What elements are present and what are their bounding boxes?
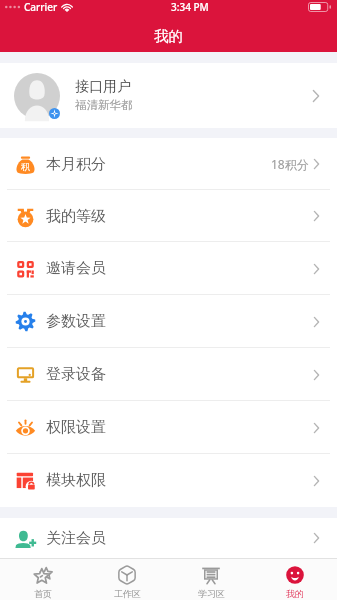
- staticText: 学习区: [198, 588, 225, 599]
- staticText: 本月积分: [46, 155, 106, 174]
- staticText: 我的等级: [46, 207, 106, 226]
- staticText: 首页: [34, 588, 52, 599]
- staticText: 邀请会员: [46, 259, 106, 278]
- staticText: 福清新华都: [75, 98, 133, 112]
- staticText: 18积分: [271, 156, 309, 172]
- button[interactable]: 登录设备: [0, 348, 337, 401]
- button[interactable]: 模块权限: [0, 454, 337, 507]
- button[interactable]: 学习区: [169, 559, 253, 600]
- button[interactable]: 权限设置: [0, 401, 337, 454]
- button[interactable]: 关注会员: [0, 518, 337, 558]
- staticText: 模块权限: [46, 471, 106, 490]
- button[interactable]: 邀请会员: [0, 242, 337, 295]
- button[interactable]: 参数设置: [0, 295, 337, 348]
- button[interactable]: 积: [0, 138, 337, 190]
- staticText: 接口用户: [75, 78, 131, 96]
- button[interactable]: 我的: [253, 559, 337, 600]
- button[interactable]: 工作区: [85, 559, 169, 600]
- staticText: Carrier: [24, 0, 58, 14]
- button[interactable]: 接口用户: [0, 63, 337, 128]
- staticText: 我的: [154, 27, 183, 45]
- staticText: 关注会员: [46, 529, 106, 548]
- button[interactable]: 我的等级: [0, 190, 337, 242]
- staticText: 我的: [286, 588, 304, 599]
- staticText: 权限设置: [46, 418, 106, 437]
- staticText: 工作区: [114, 588, 141, 599]
- staticText: 3:34 PM: [171, 0, 209, 14]
- staticText: 登录设备: [46, 365, 106, 384]
- staticText: 积: [21, 161, 30, 172]
- button[interactable]: 首页: [0, 559, 85, 600]
- staticText: 参数设置: [46, 312, 106, 331]
